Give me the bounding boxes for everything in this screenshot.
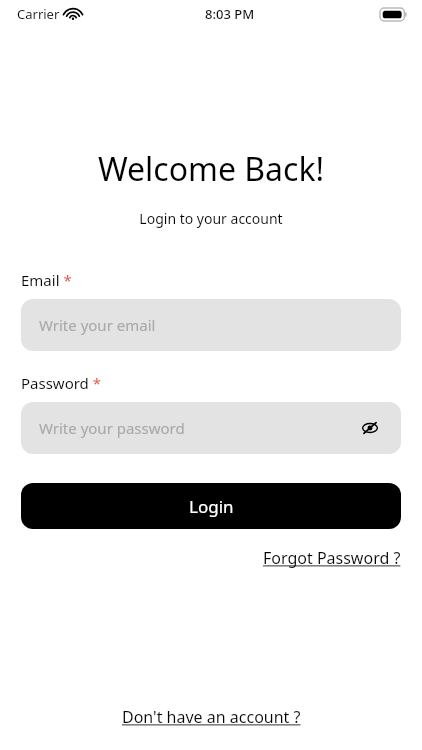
button[interactable]: Login	[21, 483, 401, 529]
button[interactable]: Write your email	[21, 299, 401, 351]
button[interactable]: Show password	[357, 415, 383, 441]
staticText: Write your email	[39, 315, 156, 335]
staticText: Carrier	[17, 5, 60, 23]
staticText: Password *	[21, 373, 102, 393]
staticText: Login to your account	[0, 209, 422, 228]
staticText: Forgot Password ?	[263, 547, 401, 569]
button[interactable]: Forgot Password ?	[263, 547, 401, 569]
staticText: Login	[189, 495, 234, 518]
button[interactable]: Write your password	[21, 402, 401, 454]
staticText: Don't have an account ?	[122, 706, 301, 728]
button[interactable]: Don't have an account ?	[122, 706, 301, 728]
staticText: Email *	[21, 270, 72, 290]
staticText: Welcome Back!	[0, 147, 422, 191]
staticText: Write your password	[39, 418, 185, 438]
staticText: 8:03 PM	[205, 5, 255, 23]
